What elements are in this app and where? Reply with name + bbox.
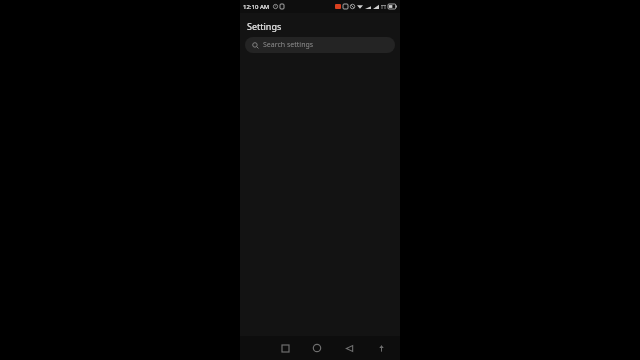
button[interactable]: Search settings [245,37,395,53]
button[interactable]: Recents [274,337,296,359]
staticText: Search settings [263,40,314,50]
button[interactable]: Home [306,337,328,359]
button[interactable]: Back [338,337,360,359]
staticText: 12:10 AM [243,3,270,11]
button[interactable]: Switch input method [370,337,392,359]
staticText: Settings [247,20,282,32]
